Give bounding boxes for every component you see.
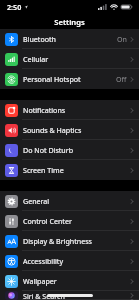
button[interactable]: General xyxy=(0,191,139,211)
button[interactable]: Sounds & Haptics xyxy=(0,120,139,140)
button[interactable]: Notifications xyxy=(0,100,139,120)
staticText: Personal Hotspot xyxy=(23,74,116,84)
button[interactable]: Personal Hotspot xyxy=(0,69,139,89)
staticText: Notifications xyxy=(23,105,130,115)
staticText: Bluetooth xyxy=(23,34,117,44)
staticText: Display & Brightness xyxy=(23,236,130,246)
button[interactable]: Control Center xyxy=(0,211,139,231)
staticText: Do Not Disturb xyxy=(23,145,130,155)
staticText: On xyxy=(117,34,127,44)
staticText: Siri & Search xyxy=(23,291,130,300)
button[interactable]: Display & Brightness xyxy=(0,231,139,251)
button[interactable]: Siri & Search xyxy=(0,291,139,300)
button[interactable]: Bluetooth xyxy=(0,29,139,49)
staticText: Wallpaper xyxy=(23,276,130,286)
staticText: Sounds & Haptics xyxy=(23,125,130,135)
staticText: Control Center xyxy=(23,216,130,226)
button[interactable]: Do Not Disturb xyxy=(0,140,139,160)
staticText: Off xyxy=(116,74,127,84)
button[interactable]: Cellular xyxy=(0,49,139,69)
button[interactable]: Wallpaper xyxy=(0,271,139,291)
staticText: 2:50 xyxy=(7,2,22,12)
button[interactable]: Accessibility xyxy=(0,251,139,271)
staticText: General xyxy=(23,196,130,206)
button[interactable]: Screen Time xyxy=(0,160,139,180)
staticText: Settings xyxy=(54,17,85,27)
staticText: Screen Time xyxy=(23,165,130,175)
staticText: Cellular xyxy=(23,54,130,64)
staticText: Accessibility xyxy=(23,256,130,266)
